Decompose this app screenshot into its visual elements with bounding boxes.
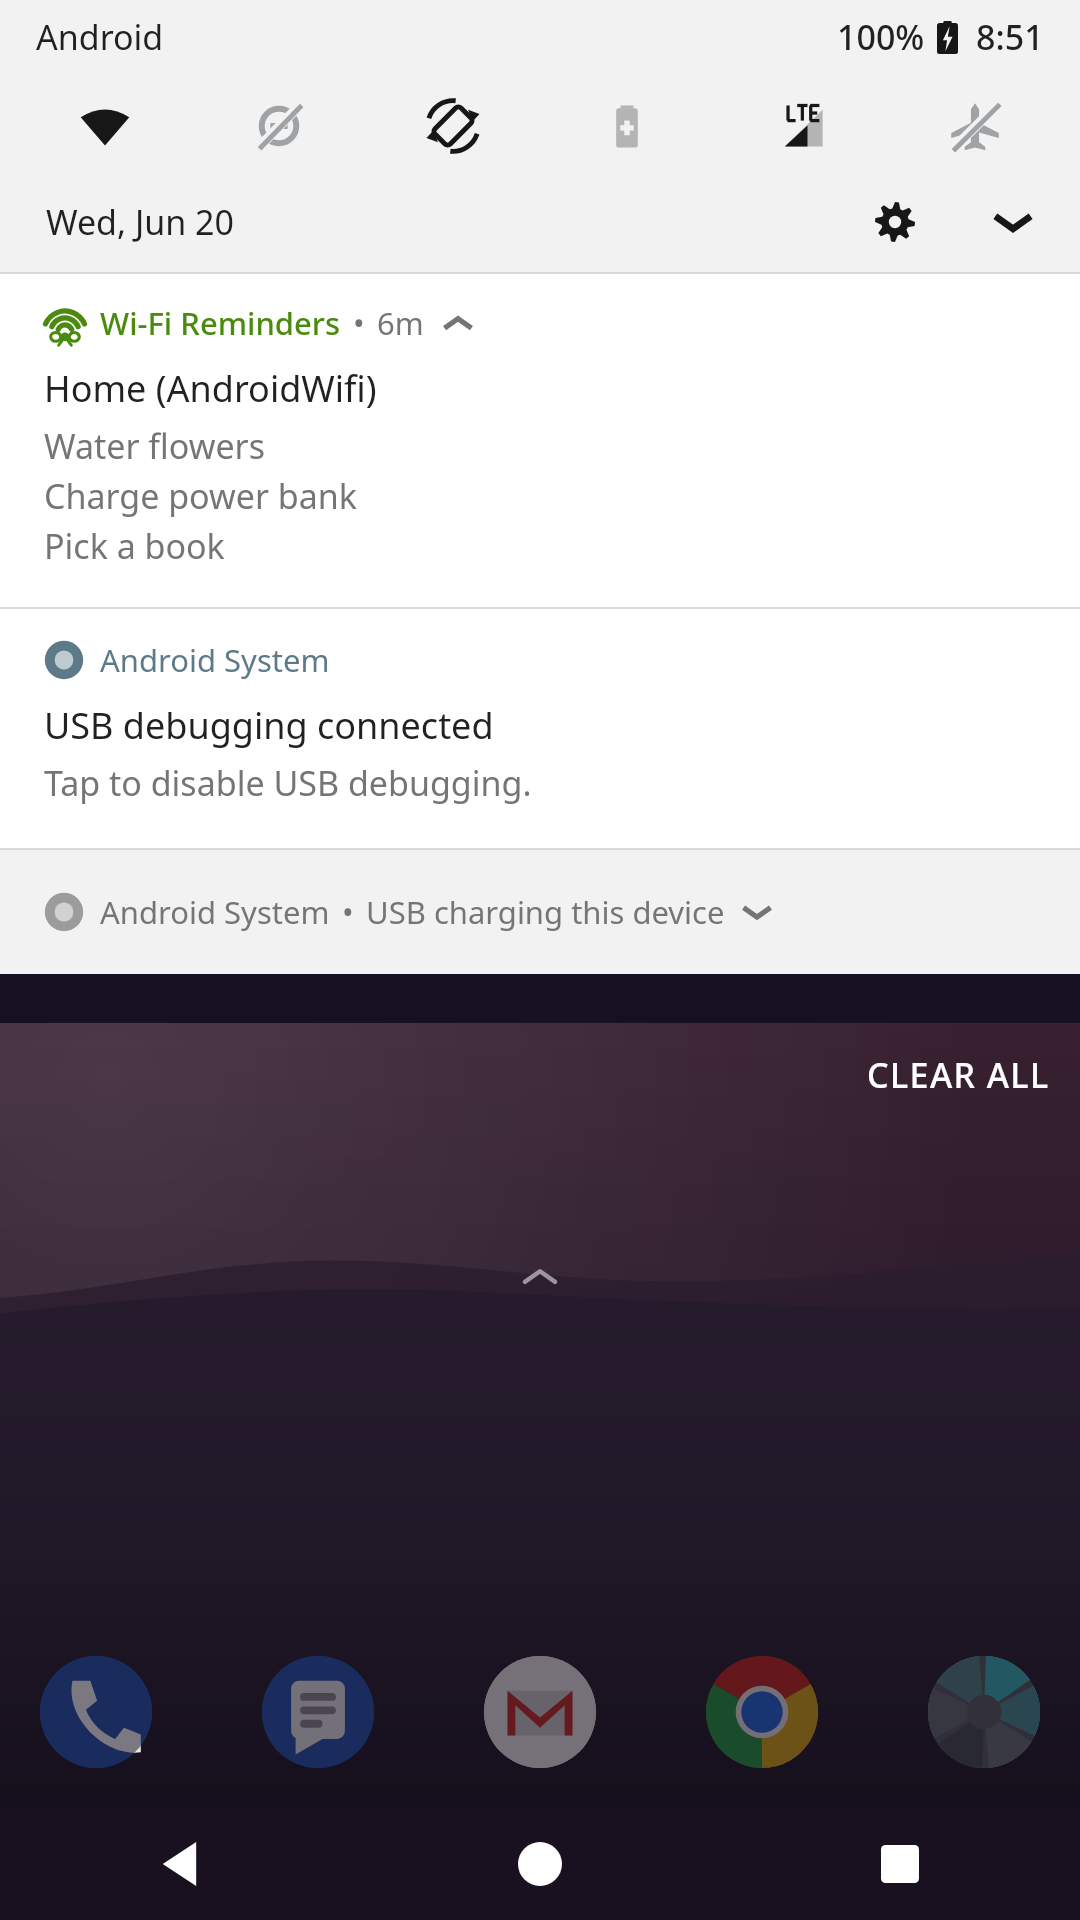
staticText: Android System <box>100 639 330 681</box>
staticText: Pick a book <box>44 523 225 569</box>
button[interactable]: Chrome <box>696 1646 828 1778</box>
staticText: Android <box>36 14 164 60</box>
button[interactable]: Gmail <box>474 1646 606 1778</box>
button[interactable]: Android System <box>0 850 1080 974</box>
button[interactable]: Home <box>360 1808 720 1920</box>
button[interactable]: Auto-rotate <box>366 74 540 178</box>
staticText: • <box>342 891 354 933</box>
staticText: Wed, Jun 20 <box>46 199 235 245</box>
button[interactable]: Settings <box>856 183 934 261</box>
button[interactable]: Expand quick settings <box>974 183 1052 261</box>
button[interactable]: Do not disturb <box>192 74 366 178</box>
staticText: Wi-Fi Reminders <box>100 302 341 344</box>
button[interactable]: CLEAR ALL <box>837 1024 1080 1126</box>
staticText: Water flowers <box>44 423 265 469</box>
staticText: Home (AndroidWifi) <box>44 364 377 413</box>
button[interactable]: Phone <box>30 1646 162 1778</box>
staticText: USB charging this device <box>366 891 725 933</box>
staticText: Tap to disable USB debugging. <box>44 760 532 806</box>
staticText: CLEAR ALL <box>867 1052 1050 1098</box>
button[interactable]: Wi-Fi <box>18 74 192 178</box>
staticText: 6m <box>377 302 424 344</box>
button[interactable]: Wi-Fi Reminders <box>0 274 1080 607</box>
staticText: 100% <box>837 14 925 60</box>
staticText: Android System <box>100 891 330 933</box>
button[interactable]: Photos <box>918 1646 1050 1778</box>
button[interactable]: Android System <box>0 609 1080 848</box>
button[interactable]: Battery saver <box>540 74 714 178</box>
staticText: • <box>353 302 365 344</box>
staticText: 8:51 <box>976 14 1044 60</box>
button[interactable]: Mobile data <box>714 74 888 178</box>
button[interactable]: Messages <box>252 1646 384 1778</box>
button[interactable]: Airplane mode <box>888 74 1062 178</box>
button[interactable]: Back <box>0 1808 360 1920</box>
staticText: USB debugging connected <box>44 701 494 750</box>
staticText: Charge power bank <box>44 473 357 519</box>
button[interactable]: Recents <box>720 1808 1080 1920</box>
